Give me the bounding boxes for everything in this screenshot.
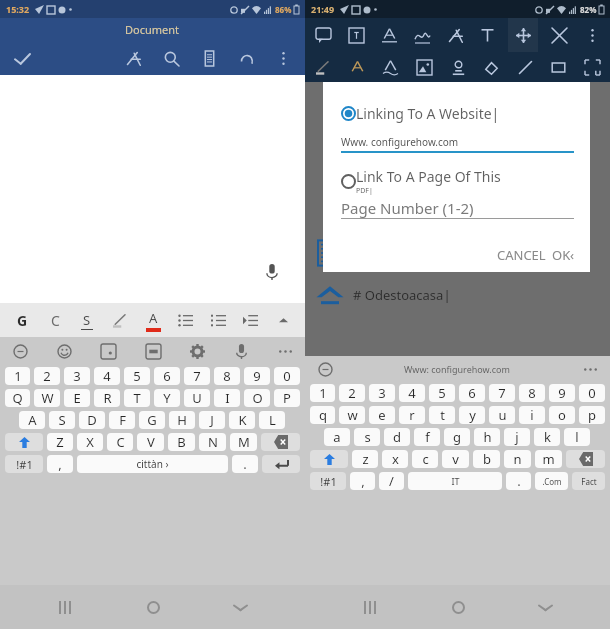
button[interactable]: IT: [408, 472, 502, 490]
button[interactable]: Voice: [229, 339, 253, 363]
button[interactable]: CANCEL: [497, 246, 546, 264]
button[interactable]: R: [94, 389, 120, 407]
button[interactable]: Signature: [410, 23, 434, 47]
button[interactable]: O: [244, 389, 270, 407]
button[interactable]: Numbered list: [206, 308, 230, 332]
button[interactable]: J: [199, 411, 225, 429]
button[interactable]: Bulleted list: [173, 308, 197, 332]
button[interactable]: l: [564, 428, 590, 446]
button[interactable]: ,: [350, 472, 375, 490]
button[interactable]: More options: [271, 46, 295, 70]
button[interactable]: 0: [579, 384, 605, 402]
button[interactable]: d: [384, 428, 410, 446]
button[interactable]: i: [519, 406, 545, 424]
button[interactable]: .: [232, 455, 258, 473]
button[interactable]: Image: [412, 55, 436, 79]
button[interactable]: Link To A Page Of This: [341, 167, 501, 196]
button[interactable]: 5: [124, 367, 150, 385]
button[interactable]: w: [339, 406, 365, 424]
button[interactable]: Recents: [348, 585, 392, 629]
button[interactable]: o: [549, 406, 575, 424]
button[interactable]: Shift: [310, 450, 348, 468]
button[interactable]: 2: [339, 384, 365, 402]
button[interactable]: Done: [10, 46, 34, 70]
button[interactable]: Enter: [262, 455, 300, 473]
button[interactable]: /: [379, 472, 404, 490]
button[interactable]: Recents: [43, 585, 87, 629]
button[interactable]: .Com: [535, 472, 568, 490]
button[interactable]: !#1: [5, 455, 43, 473]
button[interactable]: 8: [214, 367, 240, 385]
button[interactable]: Pages: [197, 46, 221, 70]
button[interactable]: Home: [131, 585, 175, 629]
button[interactable]: Back: [218, 585, 262, 629]
button[interactable]: Home: [436, 585, 480, 629]
button[interactable]: I: [214, 389, 240, 407]
button[interactable]: Underline style: [378, 55, 402, 79]
button[interactable]: More options: [580, 23, 604, 47]
button[interactable]: Close: [547, 23, 571, 47]
button[interactable]: 1: [310, 384, 335, 402]
button[interactable]: Draw: [443, 23, 467, 47]
button[interactable]: U: [184, 389, 210, 407]
button[interactable]: s: [354, 428, 380, 446]
button[interactable]: Shift: [5, 433, 43, 451]
button[interactable]: y: [459, 406, 485, 424]
button[interactable]: Collapse: [271, 308, 295, 332]
button[interactable]: Translate: [313, 357, 337, 381]
button[interactable]: Voice input: [255, 255, 289, 289]
button[interactable]: 5: [429, 384, 455, 402]
button[interactable]: a: [324, 428, 350, 446]
button[interactable]: f: [414, 428, 440, 446]
button[interactable]: V: [137, 433, 164, 451]
button[interactable]: F: [109, 411, 135, 429]
button[interactable]: Q: [5, 389, 30, 407]
button[interactable]: Highlight: [108, 308, 132, 332]
button[interactable]: p: [579, 406, 605, 424]
button[interactable]: Linking To A Website|: [341, 104, 500, 123]
button[interactable]: L: [259, 411, 285, 429]
button[interactable]: B: [168, 433, 195, 451]
button[interactable]: H: [169, 411, 195, 429]
button[interactable]: 4: [399, 384, 425, 402]
button[interactable]: GIF: [141, 339, 165, 363]
button[interactable]: .: [506, 472, 531, 490]
button[interactable]: 7: [489, 384, 515, 402]
button[interactable]: Indent: [238, 308, 262, 332]
button[interactable]: More: [578, 357, 602, 381]
button[interactable]: Backspace: [566, 450, 605, 468]
button[interactable]: k: [534, 428, 560, 446]
button[interactable]: Search: [159, 46, 183, 70]
button[interactable]: Emoji: [52, 339, 76, 363]
button[interactable]: C: [43, 308, 67, 332]
button[interactable]: Eraser: [479, 55, 503, 79]
button[interactable]: 8: [519, 384, 545, 402]
button[interactable]: OK‹: [552, 246, 574, 264]
button[interactable]: 3: [369, 384, 395, 402]
button[interactable]: X: [77, 433, 103, 451]
button[interactable]: Move: [508, 18, 538, 52]
button[interactable]: h: [474, 428, 500, 446]
button[interactable]: A: [19, 411, 45, 429]
button[interactable]: Font color: [345, 55, 369, 79]
button[interactable]: Undo: [235, 46, 259, 70]
button[interactable]: G: [139, 411, 165, 429]
button[interactable]: Pen: [121, 46, 145, 70]
button[interactable]: 9: [244, 367, 270, 385]
button[interactable]: n: [504, 450, 531, 468]
button[interactable]: x: [382, 450, 408, 468]
button[interactable]: W: [34, 389, 60, 407]
button[interactable]: C: [107, 433, 133, 451]
button[interactable]: Text: [475, 23, 499, 47]
button[interactable]: z: [352, 450, 378, 468]
button[interactable]: M: [230, 433, 257, 451]
button[interactable]: 0: [274, 367, 300, 385]
button[interactable]: cittàn ›: [77, 455, 228, 473]
button[interactable]: b: [473, 450, 500, 468]
button[interactable]: G: [10, 308, 34, 332]
button[interactable]: 6: [459, 384, 485, 402]
button[interactable]: 1: [5, 367, 30, 385]
button[interactable]: Y: [154, 389, 180, 407]
button[interactable]: 4: [94, 367, 120, 385]
button[interactable]: Fact: [572, 472, 605, 490]
